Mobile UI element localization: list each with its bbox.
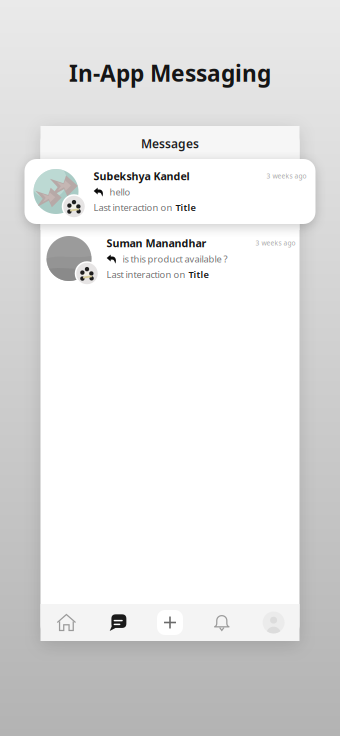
- staticText: is this product available ?: [122, 253, 227, 265]
- staticText: hello: [109, 186, 130, 198]
- button[interactable]: Profile: [248, 604, 299, 641]
- staticText: Suman Manandhar: [106, 236, 206, 250]
- staticText: Title: [175, 201, 195, 214]
- staticText: In-App Messaging: [69, 58, 271, 88]
- button[interactable]: Home: [40, 604, 92, 641]
- staticText: Title: [188, 268, 208, 281]
- button[interactable]: Suman Manandhar: [40, 230, 299, 287]
- button[interactable]: Subekshya Kandel: [24, 159, 315, 224]
- button[interactable]: New post: [144, 604, 196, 641]
- staticText: 3 weeks ago: [266, 172, 306, 180]
- button[interactable]: Messages: [92, 604, 144, 641]
- staticText: Messages: [141, 135, 199, 151]
- staticText: Subekshya Kandel: [93, 169, 189, 183]
- button[interactable]: Notifications: [196, 604, 248, 641]
- staticText: Last interaction on: [93, 201, 172, 214]
- staticText: 3 weeks ago: [255, 239, 295, 247]
- staticText: Last interaction on: [106, 268, 185, 281]
